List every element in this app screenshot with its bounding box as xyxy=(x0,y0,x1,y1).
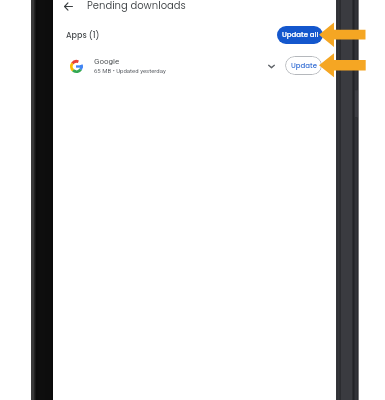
staticText: Apps (1) xyxy=(66,30,100,41)
staticText: Google xyxy=(94,57,120,66)
button[interactable]: Update all xyxy=(277,26,323,44)
button[interactable]: Update xyxy=(285,56,322,75)
staticText: 65 MB • Updated yesterday xyxy=(94,67,166,74)
button[interactable]: Expand xyxy=(262,57,281,76)
staticText: Update xyxy=(291,61,317,71)
button[interactable]: Back xyxy=(58,0,78,16)
staticText: Pending downloads xyxy=(87,0,186,12)
staticText: Update all xyxy=(282,30,319,40)
